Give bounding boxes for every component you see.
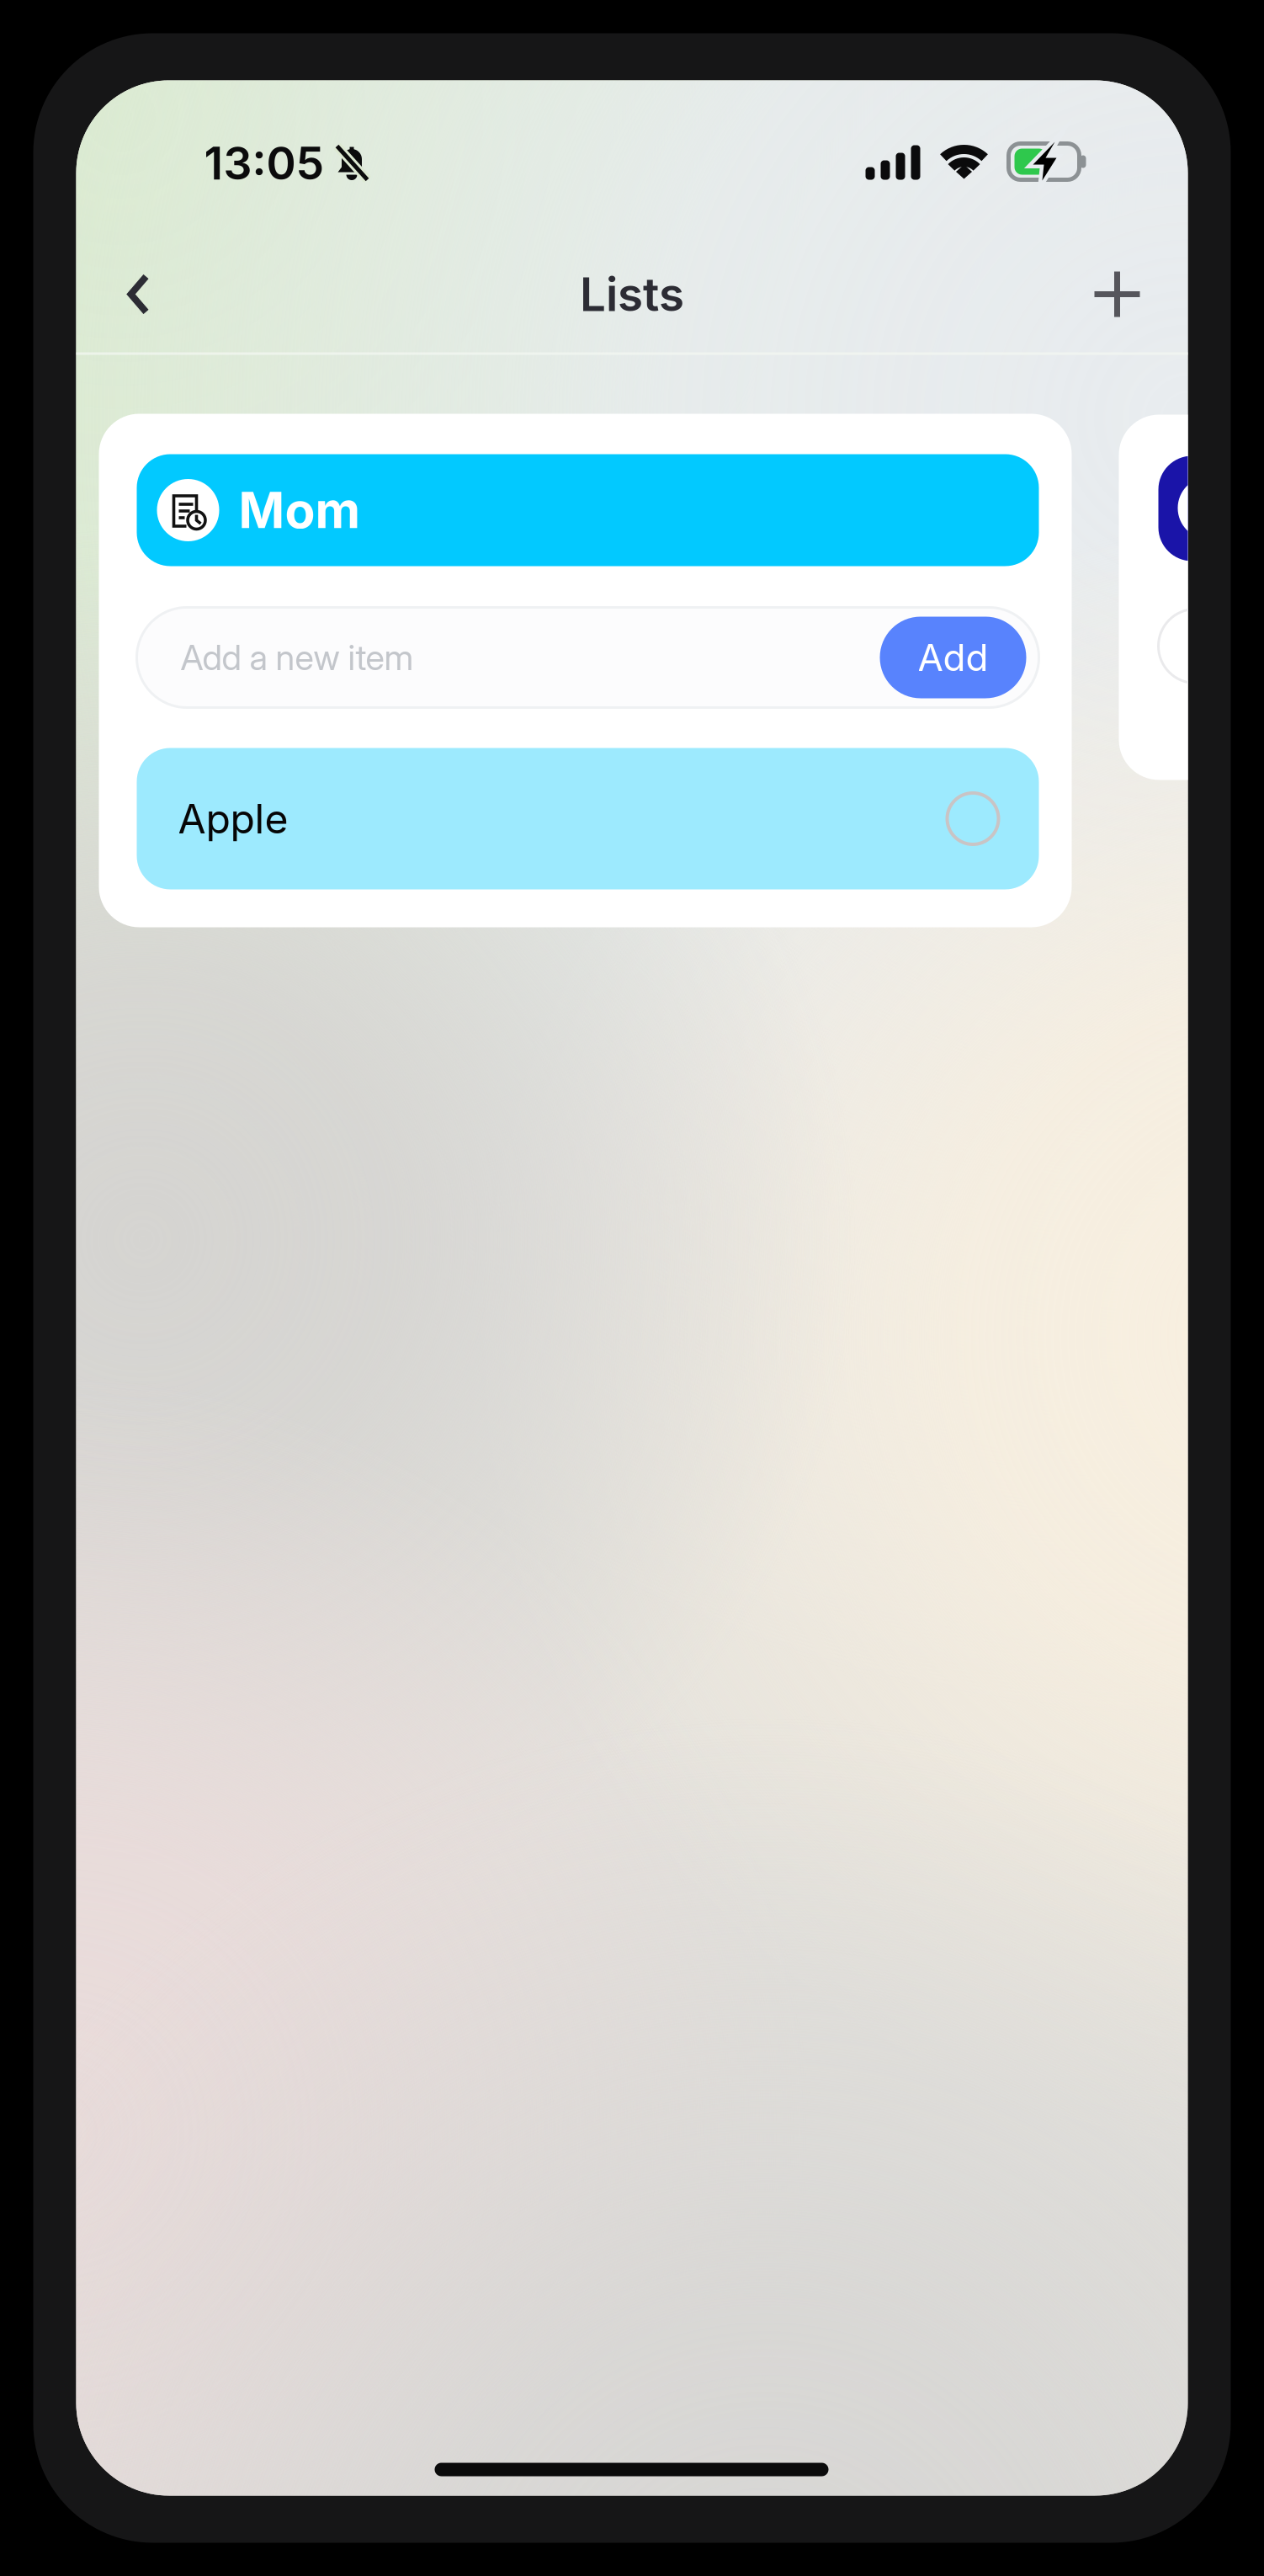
button[interactable]: Back: [88, 250, 189, 338]
staticText: Lists: [580, 266, 684, 322]
button[interactable]: Add: [880, 617, 1026, 698]
staticText: 13:05: [204, 136, 324, 190]
button[interactable]: Add a new item: [137, 607, 1039, 708]
staticText: Add a new item: [181, 636, 414, 679]
button[interactable]: Mom: [137, 454, 1039, 566]
button[interactable]: New list: [1067, 250, 1168, 338]
staticText: Apple: [178, 794, 288, 843]
button[interactable]: Next list: [1119, 415, 1264, 780]
staticText: Add: [918, 635, 988, 680]
button[interactable]: Apple: [137, 748, 1039, 889]
staticText: Mom: [239, 480, 361, 540]
